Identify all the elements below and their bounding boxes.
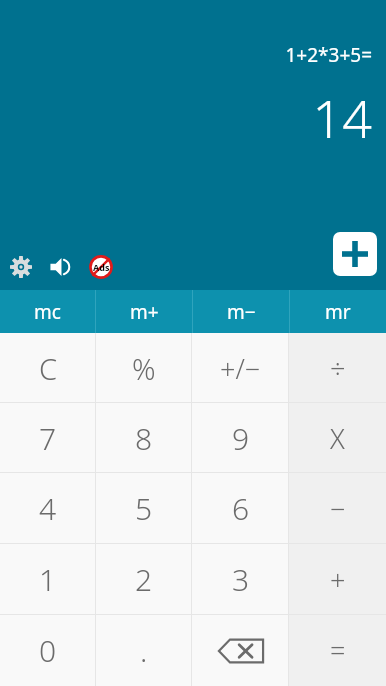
button[interactable]: Sound	[44, 250, 78, 284]
button[interactable]: 8	[96, 403, 192, 473]
staticText: 7	[39, 418, 57, 459]
staticText: 6	[232, 488, 250, 529]
button[interactable]: 3	[192, 544, 289, 615]
staticText: +/−	[220, 350, 261, 387]
button[interactable]: +	[289, 544, 386, 615]
staticText: mc	[34, 299, 61, 325]
staticText: C	[39, 349, 58, 388]
button[interactable]: 5	[96, 473, 192, 544]
staticText: X	[330, 420, 345, 457]
button[interactable]: 7	[0, 403, 96, 473]
button[interactable]: Settings	[4, 250, 38, 284]
button[interactable]: Backspace	[192, 615, 289, 686]
staticText: m−	[227, 299, 256, 325]
staticText: 3	[232, 559, 250, 600]
staticText: 4	[39, 488, 57, 529]
staticText: 9	[232, 418, 250, 459]
staticText: mr	[325, 299, 351, 325]
staticText: −	[330, 490, 346, 527]
button[interactable]: m−	[193, 290, 289, 333]
button[interactable]: 2	[96, 544, 192, 615]
button[interactable]: X	[289, 403, 386, 473]
staticText: 0	[39, 630, 57, 671]
button[interactable]: 9	[192, 403, 289, 473]
staticText: 14	[312, 82, 372, 153]
button[interactable]: %	[96, 333, 192, 403]
staticText: 1	[39, 559, 57, 600]
staticText: 2	[135, 559, 153, 600]
staticText: +	[330, 561, 346, 598]
button[interactable]: m+	[96, 290, 192, 333]
button[interactable]: mc	[0, 290, 95, 333]
button[interactable]: 4	[0, 473, 96, 544]
staticText: 1+2*3+5=	[285, 42, 372, 68]
button[interactable]: ÷	[289, 333, 386, 403]
button[interactable]: Add	[333, 232, 377, 276]
button[interactable]: +/−	[192, 333, 289, 403]
staticText: Ads	[93, 261, 110, 273]
staticText: m+	[130, 299, 159, 325]
staticText: ÷	[330, 350, 346, 387]
button[interactable]: C	[0, 333, 96, 403]
button[interactable]: =	[289, 615, 386, 686]
staticText: =	[330, 632, 346, 669]
button[interactable]: Remove ads	[84, 250, 118, 284]
staticText: .	[140, 630, 148, 671]
button[interactable]: −	[289, 473, 386, 544]
button[interactable]: 0	[0, 615, 96, 686]
staticText: 5	[135, 488, 153, 529]
button[interactable]: 1	[0, 544, 96, 615]
button[interactable]: .	[96, 615, 192, 686]
button[interactable]: 6	[192, 473, 289, 544]
staticText: %	[132, 349, 156, 388]
button[interactable]: mr	[290, 290, 386, 333]
staticText: 8	[135, 418, 153, 459]
